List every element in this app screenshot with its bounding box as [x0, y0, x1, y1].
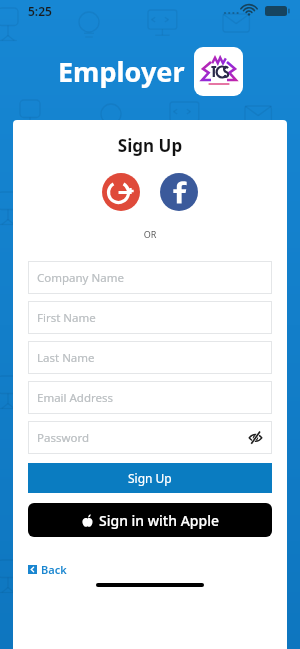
staticText: Password: [37, 430, 90, 446]
staticText: Email Address: [37, 390, 114, 406]
button[interactable]: Back: [28, 562, 67, 577]
button[interactable]: Last Name: [28, 341, 272, 374]
other: Show password: [248, 430, 263, 445]
staticText: Employer: [58, 53, 185, 90]
button[interactable]: Sign in with Apple: [28, 503, 272, 537]
button[interactable]: Sign up with Facebook: [160, 173, 198, 211]
button[interactable]: Company Name: [28, 261, 272, 294]
staticText: Back: [41, 562, 67, 577]
staticText: Sign in with Apple: [99, 511, 219, 530]
staticText: Last Name: [37, 350, 95, 366]
staticText: Company Name: [37, 270, 124, 286]
button[interactable]: Password: [28, 421, 272, 454]
button[interactable]: First Name: [28, 301, 272, 334]
button[interactable]: Sign up with Google: [102, 173, 140, 211]
staticText: OR: [13, 228, 287, 240]
button[interactable]: Email Address: [28, 381, 272, 414]
staticText: 5:25: [28, 3, 52, 19]
staticText: First Name: [37, 310, 96, 326]
staticText: Sign Up: [128, 470, 172, 486]
staticText: Sign Up: [13, 134, 287, 157]
button[interactable]: Sign Up: [28, 463, 272, 493]
